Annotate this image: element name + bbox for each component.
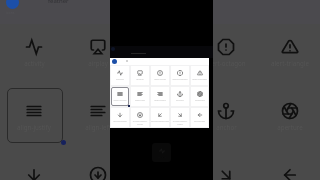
button[interactable]: arrow-down: [2, 152, 66, 180]
button[interactable]: align-right: [151, 87, 169, 106]
button[interactable]: arrow-left: [258, 152, 320, 180]
button[interactable]: activity: [111, 66, 129, 85]
button[interactable]: Feather logo: [112, 59, 117, 64]
staticText: arrow-down-circle: [131, 119, 149, 125]
button[interactable]: align-justify: [111, 87, 129, 106]
button[interactable]: alert-circle: [130, 24, 194, 88]
button[interactable]: arrow-down-right: [171, 108, 189, 127]
button[interactable]: activity: [2, 24, 66, 88]
staticText: feather: [48, 0, 69, 5]
button[interactable]: alert-octagon: [171, 66, 189, 85]
staticText: arrow-left: [194, 119, 205, 122]
button[interactable]: alert-triangle: [258, 24, 320, 88]
staticText: alert-octagon: [206, 59, 246, 67]
staticText: alert-circle: [154, 77, 166, 80]
button[interactable]: arrow-down-left: [151, 108, 169, 127]
button[interactable]: anchor: [194, 88, 258, 152]
staticText: align-right: [154, 98, 166, 101]
staticText: arrow-down-right: [171, 119, 189, 125]
button[interactable]: alert-octagon: [194, 24, 258, 88]
staticText: alert-circle: [147, 59, 178, 67]
staticText: airplay: [136, 77, 144, 80]
button[interactable]: airplay: [131, 66, 149, 85]
staticText: alert-octagon: [172, 77, 188, 80]
button[interactable]: aperture: [258, 88, 320, 152]
button[interactable]: anchor: [171, 87, 189, 106]
staticText: anchor: [176, 98, 184, 101]
button[interactable]: arrow-down-right: [194, 152, 258, 180]
button[interactable]: Feather logo: [6, 0, 19, 9]
button[interactable]: arrow-down-circle: [66, 152, 130, 180]
staticText: align-left: [85, 123, 111, 131]
button[interactable]: alert-triangle: [191, 66, 208, 85]
staticText: arrow-down-left: [151, 119, 169, 122]
staticText: arrow-down: [113, 119, 127, 122]
button[interactable]: align-left: [66, 88, 130, 152]
button[interactable]: arrow-down: [111, 108, 129, 127]
staticText: align-right: [147, 123, 178, 131]
button[interactable]: airplay: [66, 24, 130, 88]
button[interactable]: aperture: [191, 87, 208, 106]
button[interactable]: arrow-left: [191, 108, 208, 127]
button[interactable]: arrow-down-circle: [131, 108, 149, 127]
button[interactable]: align-right: [130, 88, 194, 152]
button[interactable]: alert-circle: [151, 66, 169, 85]
staticText: aperture: [195, 98, 205, 101]
button[interactable]: align-left: [131, 87, 149, 106]
staticText: activity: [116, 77, 124, 80]
staticText: align-justify: [113, 98, 127, 101]
button[interactable]: align-justify: [2, 88, 66, 152]
staticText: alert-triangle: [192, 77, 207, 80]
staticText: align-left: [135, 98, 145, 101]
